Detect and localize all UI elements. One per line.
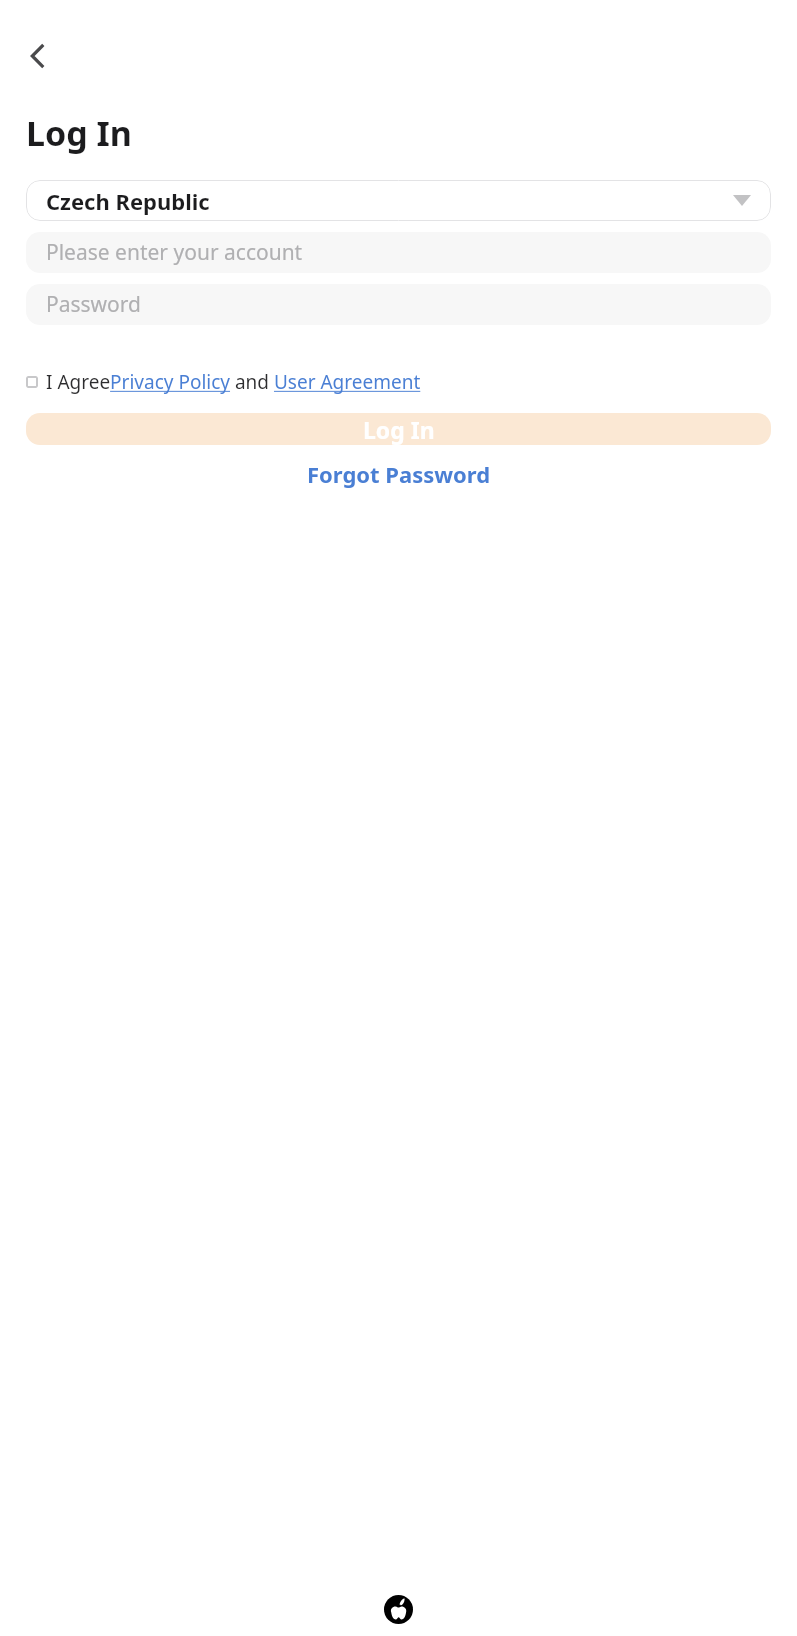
button[interactable]: Log In (26, 413, 771, 445)
staticText: Please enter your account (46, 238, 303, 267)
button[interactable]: Agree to terms checkbox (26, 376, 38, 388)
staticText: Czech Republic (46, 186, 210, 216)
button[interactable]: Forgot Password (291, 453, 507, 495)
button[interactable]: I AgreePrivacy Policy and User Agreement (46, 369, 421, 395)
staticText: Log In (363, 414, 435, 445)
button[interactable]: Back (12, 30, 64, 82)
staticText: Forgot Password (307, 459, 491, 489)
staticText: Password (46, 290, 141, 319)
staticText: Log In (26, 110, 132, 156)
button[interactable]: Password (26, 284, 771, 325)
button[interactable]: Sign in with Apple (384, 1595, 413, 1624)
button[interactable]: Czech Republic (26, 180, 771, 221)
button[interactable]: Please enter your account (26, 232, 771, 273)
